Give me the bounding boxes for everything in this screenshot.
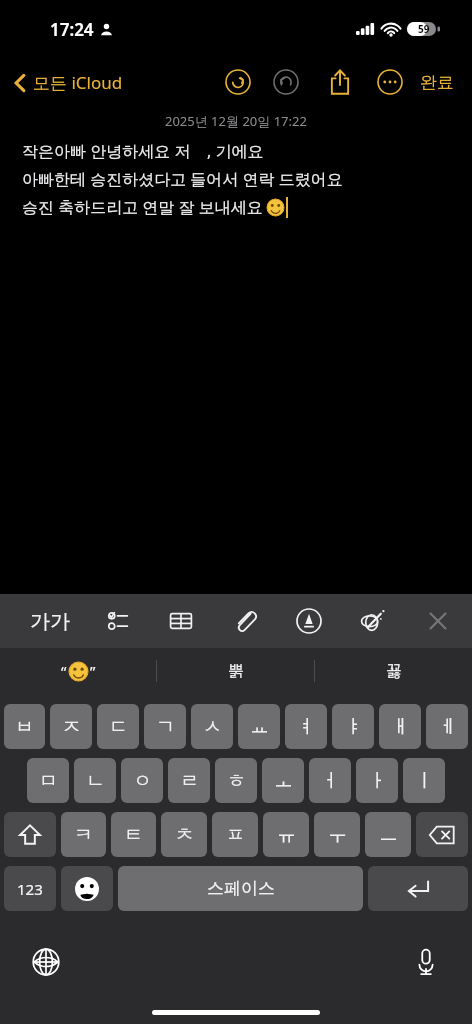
button[interactable]: ㅛ [238, 704, 280, 749]
button[interactable]: 꾫 [315, 648, 472, 694]
button[interactable]: Return [368, 866, 468, 911]
staticText: ㅑ [344, 715, 363, 739]
button[interactable]: ㅣ [403, 758, 445, 803]
button[interactable]: Markup [286, 599, 332, 643]
button[interactable]: ㅋ [61, 812, 106, 857]
staticText: ㅠ [277, 823, 296, 847]
button[interactable]: 스페이스 [118, 866, 363, 911]
staticText: 작은아빠 안녕하세요 저 , 기에요 [22, 140, 264, 162]
staticText: ㅐ [391, 715, 410, 739]
staticText: ㅕ [297, 715, 316, 739]
staticText: ㅎ [227, 769, 246, 793]
staticText: ㅅ [203, 715, 222, 739]
staticText: ㄷ [109, 715, 128, 739]
button[interactable]: 모든 iCloud [12, 67, 125, 98]
button[interactable]: ㅕ [285, 704, 327, 749]
staticText: ㅁ [39, 769, 58, 793]
button[interactable]: Attach [222, 599, 268, 643]
staticText: ” [90, 661, 96, 681]
staticText: ㅡ [379, 823, 398, 847]
button[interactable]: ㅑ [332, 704, 374, 749]
staticText: ㅓ [321, 769, 340, 793]
button[interactable]: Share [320, 62, 360, 102]
button[interactable]: ㅍ [212, 812, 258, 857]
button[interactable]: Change keyboard language [22, 938, 70, 986]
button[interactable]: ㅠ [263, 812, 309, 857]
button[interactable]: ㅊ [161, 812, 207, 857]
staticText: 승진 축하드리고 연말 잘 보내세요 [22, 196, 267, 218]
staticText: ㅋ [74, 823, 93, 847]
staticText: ㅇ [133, 769, 152, 793]
staticText: 123 [17, 879, 43, 899]
button[interactable]: ㅂ [4, 704, 45, 749]
button[interactable]: ㅌ [111, 812, 156, 857]
staticText: ㅌ [124, 823, 143, 847]
button[interactable]: ㅜ [314, 812, 360, 857]
staticText: ㅊ [175, 823, 194, 847]
button[interactable]: 완료 [414, 66, 460, 99]
button[interactable]: ㅐ [379, 704, 421, 749]
staticText: ㅜ [328, 823, 347, 847]
button[interactable]: ㅓ [309, 758, 351, 803]
staticText: 2025년 12월 20일 17:22 [165, 112, 307, 130]
staticText: “ [61, 661, 67, 681]
staticText: 꾫 [386, 661, 402, 681]
staticText: 17:24 [50, 18, 94, 41]
button[interactable]: 뿕 [157, 648, 314, 694]
staticText: 가가 [30, 609, 70, 634]
button[interactable]: ㄹ [168, 758, 210, 803]
staticText: ㅂ [15, 715, 34, 739]
button[interactable]: ㅗ [262, 758, 304, 803]
button[interactable]: ㅡ [365, 812, 411, 857]
staticText: 59 [418, 22, 430, 36]
staticText: ㅈ [62, 715, 81, 739]
button[interactable]: Shift [4, 812, 56, 857]
button[interactable]: ㄱ [144, 704, 186, 749]
button[interactable]: Checklist [95, 599, 141, 643]
button[interactable]: “ [0, 648, 156, 694]
staticText: 모든 iCloud [33, 71, 123, 94]
button[interactable]: ㅅ [191, 704, 233, 749]
staticText: ㅛ [250, 715, 269, 739]
button[interactable]: 123 [4, 866, 56, 911]
button[interactable]: 가가 [22, 599, 78, 643]
staticText: ㅔ [438, 715, 457, 739]
staticText: ㄹ [180, 769, 199, 793]
staticText: ㄴ [86, 769, 105, 793]
button[interactable]: ㄷ [97, 704, 139, 749]
button[interactable]: Emoji [61, 866, 113, 911]
staticText: 스페이스 [207, 878, 275, 899]
button[interactable]: Intelligence [350, 599, 396, 643]
button[interactable]: Close keyboard [414, 599, 462, 643]
staticText: 완료 [420, 72, 454, 93]
button[interactable]: Dictation [402, 938, 450, 986]
staticText: ㅏ [368, 769, 387, 793]
button[interactable]: More options [370, 62, 410, 102]
button[interactable]: ㅁ [27, 758, 69, 803]
button[interactable]: Table [158, 599, 204, 643]
staticText: ㅍ [226, 823, 245, 847]
staticText: ㅣ [415, 769, 434, 793]
staticText: 아빠한테 승진하셨다고 들어서 연락 드렸어요 [22, 168, 343, 190]
staticText: ㄱ [156, 715, 175, 739]
button[interactable]: Undo [218, 62, 258, 102]
button[interactable]: ㄴ [74, 758, 116, 803]
button[interactable]: ㅔ [426, 704, 468, 749]
button[interactable]: ㅈ [50, 704, 92, 749]
button[interactable]: ㅇ [121, 758, 163, 803]
button[interactable]: Redo [266, 62, 306, 102]
button[interactable]: ㅎ [215, 758, 257, 803]
button[interactable]: Backspace [416, 812, 468, 857]
staticText: 뿕 [228, 661, 244, 681]
staticText: ㅗ [274, 769, 293, 793]
button[interactable]: ㅏ [356, 758, 398, 803]
